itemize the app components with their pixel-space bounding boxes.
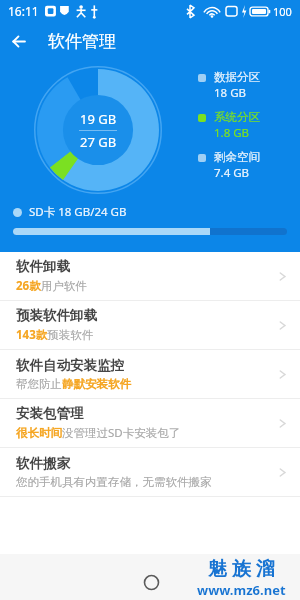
staticText: 16:11 bbox=[8, 3, 39, 19]
staticText: 7.4 GB bbox=[214, 165, 250, 181]
staticText: 18 GB bbox=[214, 85, 246, 101]
staticText: 预装软件卸载 bbox=[16, 307, 97, 324]
staticText: 27 GB bbox=[80, 133, 117, 151]
staticText: 剩余空间 bbox=[214, 150, 260, 164]
button[interactable]: Back bbox=[0, 22, 38, 60]
staticText: www.mz6.net bbox=[197, 581, 286, 599]
staticText: 1.8 GB bbox=[214, 125, 250, 141]
staticText: 安装包管理 bbox=[16, 405, 84, 422]
button[interactable]: 软件卸载 bbox=[0, 252, 300, 300]
button[interactable]: 软件搬家 bbox=[0, 448, 300, 496]
staticText: 系统分区 bbox=[214, 110, 260, 124]
staticText: 19 GB bbox=[80, 110, 117, 128]
staticText: 魅 族 溜 bbox=[208, 555, 275, 581]
staticText: 您的手机具有内置存储，无需软件搬家 bbox=[16, 475, 212, 489]
button[interactable]: 预装软件卸载 bbox=[0, 301, 300, 349]
staticText: 软件搬家 bbox=[16, 455, 70, 472]
staticText: 软件卸载 bbox=[16, 258, 70, 275]
staticText: 143款预装软件 bbox=[16, 327, 94, 343]
staticText: 软件管理 bbox=[48, 31, 116, 52]
button[interactable]: 安装包管理 bbox=[0, 399, 300, 447]
staticText: 软件自动安装监控 bbox=[16, 357, 124, 374]
button[interactable]: 软件自动安装监控 bbox=[0, 350, 300, 398]
staticText: SD卡 18 GB/24 GB bbox=[29, 204, 127, 220]
staticText: 26款用户软件 bbox=[16, 278, 87, 294]
staticText: 100 bbox=[273, 4, 292, 19]
staticText: 帮您防止静默安装软件 bbox=[16, 377, 131, 391]
staticText: 很长时间没管理过SD卡安装包了 bbox=[16, 425, 181, 441]
staticText: 数据分区 bbox=[214, 70, 260, 84]
